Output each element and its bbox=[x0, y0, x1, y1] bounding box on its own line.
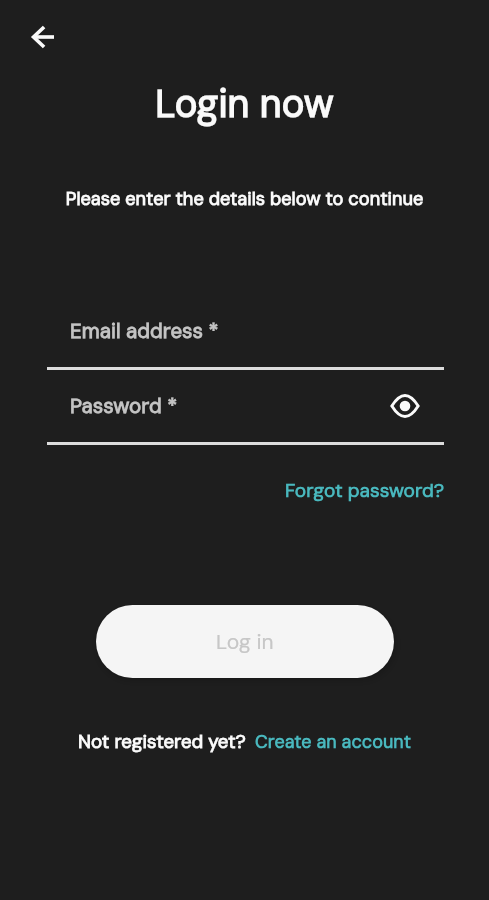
button[interactable]: Forgot password? bbox=[285, 478, 445, 503]
button[interactable]: Back bbox=[19, 13, 67, 61]
staticText: Not registered yet? bbox=[78, 729, 246, 753]
staticText: Please enter the details below to contin… bbox=[0, 187, 489, 211]
staticText: Log in bbox=[216, 628, 274, 655]
staticText: Login now bbox=[0, 79, 489, 128]
button[interactable]: Log in bbox=[96, 605, 394, 678]
button[interactable]: Create an account bbox=[255, 730, 412, 753]
button[interactable]: Show password bbox=[388, 389, 422, 423]
staticText: Email address * bbox=[70, 318, 219, 345]
staticText: Password * bbox=[70, 393, 178, 420]
